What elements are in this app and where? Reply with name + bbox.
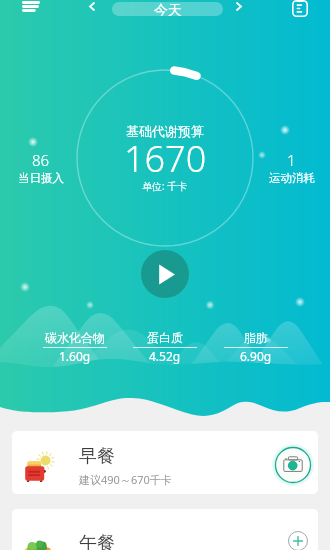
staticText: 86 bbox=[32, 150, 50, 170]
button[interactable]: Take photo bbox=[271, 443, 315, 487]
staticText: 单位: 千卡 bbox=[142, 179, 188, 193]
staticText: 建议490～670千卡 bbox=[79, 472, 172, 487]
staticText: 1670 bbox=[124, 134, 207, 183]
button[interactable]: Add food bbox=[286, 529, 310, 550]
staticText: 基础代谢预算 bbox=[126, 123, 204, 139]
staticText: 当日摄入 bbox=[18, 171, 64, 185]
button[interactable]: Previous day bbox=[80, 0, 103, 18]
button[interactable]: Next day bbox=[227, 0, 250, 18]
staticText: 1.60g bbox=[59, 348, 91, 364]
staticText: 1 bbox=[287, 150, 296, 170]
staticText: 6.90g bbox=[240, 348, 272, 364]
button[interactable]: 今天 bbox=[112, 2, 223, 16]
staticText: 脂肪 bbox=[244, 330, 268, 345]
staticText: 4.52g bbox=[149, 348, 181, 364]
button[interactable]: Menu bbox=[15, 0, 47, 22]
staticText: 早餐 bbox=[79, 445, 115, 468]
staticText: 今天 bbox=[154, 2, 182, 16]
staticText: 碳水化合物 bbox=[45, 330, 105, 345]
staticText: 运动消耗 bbox=[269, 171, 315, 185]
button[interactable]: 午餐 bbox=[12, 509, 318, 550]
button[interactable]: Diary bbox=[286, 0, 314, 22]
staticText: 午餐 bbox=[79, 532, 115, 550]
button[interactable]: 早餐 bbox=[12, 431, 318, 494]
button[interactable]: Play bbox=[141, 250, 189, 298]
staticText: 蛋白质 bbox=[147, 330, 183, 345]
